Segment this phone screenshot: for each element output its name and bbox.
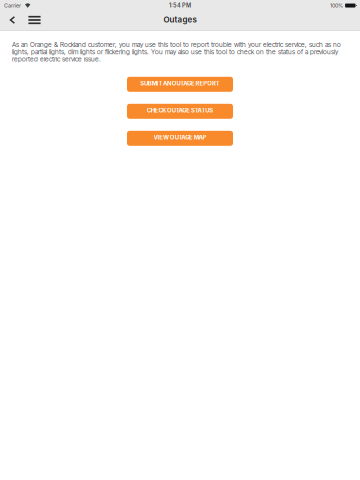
staticText: 1:54 PM [169,2,191,9]
button[interactable]: VIEW OUTAGE MAP [127,131,233,146]
button[interactable]: Back [4,11,21,31]
staticText: CHECK OUTAGE STATUS [147,107,213,114]
staticText: SUBMIT AN OUTAGE REPORT [140,80,220,87]
button[interactable]: CHECK OUTAGE STATUS [127,104,233,119]
staticText: As an Orange & Rockland customer, you ma… [12,41,341,63]
button[interactable]: Menu [21,11,48,31]
button[interactable]: SUBMIT AN OUTAGE REPORT [127,77,233,92]
staticText: 100% [330,2,343,9]
staticText: Outages [163,15,196,24]
staticText: VIEW OUTAGE MAP [154,134,206,141]
staticText: Carrier [4,2,21,9]
